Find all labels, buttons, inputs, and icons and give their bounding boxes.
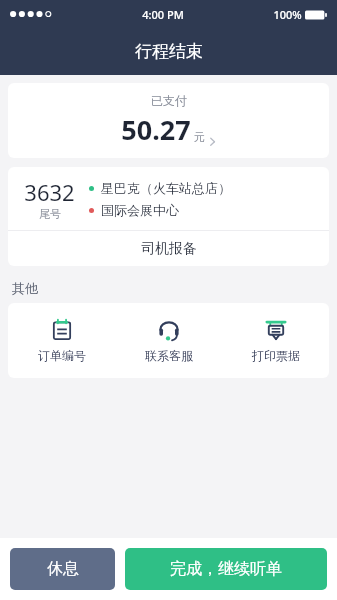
staticText: 100% xyxy=(273,7,302,22)
staticText: 休息 xyxy=(47,559,79,579)
staticText: 司机报备 xyxy=(141,240,197,258)
button[interactable]: 3632 xyxy=(8,167,329,230)
button[interactable]: 完成，继续听单 xyxy=(125,548,327,590)
staticText: 订单编号 xyxy=(38,348,86,363)
other: Contact support xyxy=(157,318,181,342)
staticText: 打印票据 xyxy=(252,348,300,363)
other: Order number xyxy=(50,318,74,342)
button[interactable]: 已支付 xyxy=(8,83,329,158)
staticText: 元 xyxy=(194,130,205,144)
staticText: 其他 xyxy=(12,280,38,296)
staticText: 已支付 xyxy=(151,93,187,108)
staticText: 星巴克（火车站总店） xyxy=(101,180,231,196)
staticText: 国际会展中心 xyxy=(101,202,179,218)
staticText: 50.27 xyxy=(121,111,191,148)
staticText: 行程结束 xyxy=(135,41,203,62)
button[interactable]: Contact support xyxy=(115,312,222,369)
staticText: 4:00 PM xyxy=(142,7,184,22)
staticText: 尾号 xyxy=(39,207,61,221)
button[interactable]: Order number xyxy=(8,312,115,369)
button[interactable]: 休息 xyxy=(10,548,115,590)
staticText: 完成，继续听单 xyxy=(170,559,282,579)
staticText: 3632 xyxy=(24,177,75,207)
other: Print receipt xyxy=(264,318,288,342)
button[interactable]: 司机报备 xyxy=(8,231,329,266)
button[interactable]: Print receipt xyxy=(222,312,329,369)
staticText: 联系客服 xyxy=(145,348,193,363)
